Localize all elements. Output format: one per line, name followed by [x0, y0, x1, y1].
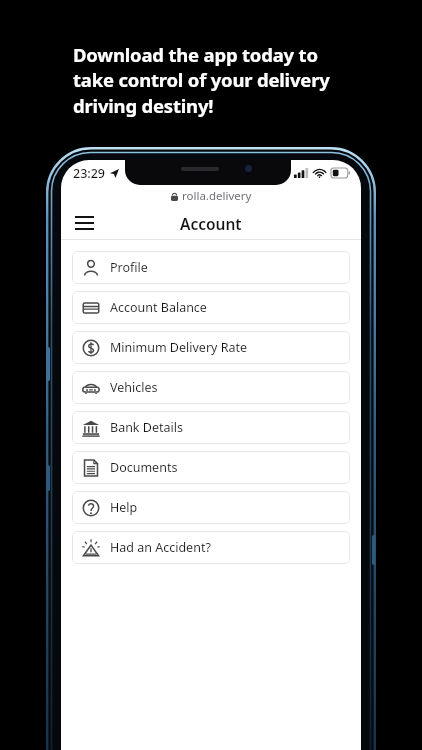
button[interactable]: Help: [72, 491, 350, 524]
staticText: 23:29: [73, 165, 106, 182]
staticText: Documents: [110, 459, 178, 476]
button[interactable]: Account Balance: [72, 291, 350, 324]
staticText: Had an Accident?: [110, 539, 211, 556]
button[interactable]: Documents: [72, 451, 350, 484]
staticText: Account: [180, 213, 242, 234]
button[interactable]: rolla.delivery: [61, 186, 361, 206]
button[interactable]: Bank Details: [72, 411, 350, 444]
button[interactable]: Open menu: [67, 206, 101, 240]
button[interactable]: Had an Accident?: [72, 531, 350, 564]
staticText: Minimum Delivery Rate: [110, 339, 248, 356]
staticText: Download the app today to take control o…: [73, 42, 330, 119]
staticText: Profile: [110, 259, 148, 276]
staticText: Bank Details: [110, 419, 183, 436]
button[interactable]: Minimum Delivery Rate: [72, 331, 350, 364]
staticText: Help: [110, 499, 138, 516]
button[interactable]: Vehicles: [72, 371, 350, 404]
staticText: rolla.delivery: [182, 188, 252, 204]
button[interactable]: Profile: [72, 251, 350, 284]
staticText: Vehicles: [110, 379, 158, 396]
staticText: Account Balance: [110, 299, 207, 316]
